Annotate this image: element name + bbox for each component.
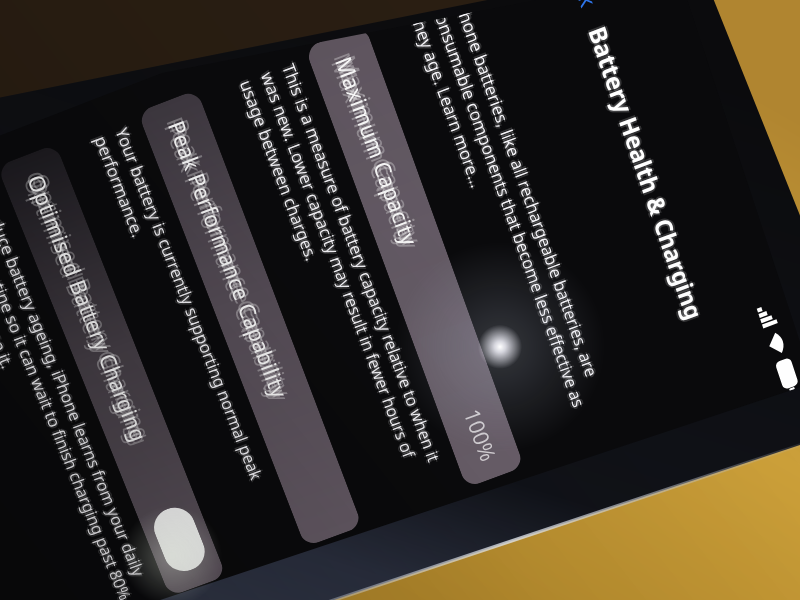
button[interactable]: Peak Performance Capability <box>137 89 362 547</box>
staticText: iPhone batteries, like all rechargeable … <box>406 0 622 447</box>
staticText: This is a measure of battery capacity re… <box>235 60 455 506</box>
staticText: Maximum Capacity <box>329 56 426 254</box>
staticText: To reduce battery ageing, iPhone learns … <box>0 179 157 600</box>
button[interactable]: Optimised Battery Charging <box>0 144 226 597</box>
staticText: To reduce battery ageing, iPhone learns … <box>0 176 158 600</box>
staticText: Your battery is currently supporting nor… <box>89 122 293 556</box>
staticText: iPhone batteries, like all rechargeable … <box>405 0 620 443</box>
button[interactable]: Maximum Capacity <box>305 25 524 488</box>
staticText: Battery Health & Charging <box>581 21 711 324</box>
staticText: Your battery is currently supporting nor… <box>90 126 295 559</box>
staticText: iPhone batteries, like all rechargeable … <box>404 0 619 446</box>
staticText: Optimised Battery Charging <box>24 169 157 444</box>
staticText: Maximum Capacity <box>326 48 424 246</box>
staticText: This is a measure of battery capacity re… <box>235 62 456 508</box>
button[interactable]: Back <box>549 0 608 16</box>
staticText: Peak Performance Capability <box>159 113 293 399</box>
staticText: Your battery is currently supporting nor… <box>87 125 292 558</box>
staticText: Optimised Battery Charging <box>22 174 155 449</box>
staticText: Back <box>559 0 604 11</box>
staticText: Maximum Capacity <box>328 52 425 250</box>
staticText: To reduce battery ageing, iPhone learns … <box>0 177 160 600</box>
staticText: Peak Performance Capability <box>157 118 291 404</box>
staticText: Maximum Capacity <box>332 51 429 249</box>
staticText: To reduce battery ageing, iPhone learns … <box>0 180 159 600</box>
staticText: To reduce battery ageing, iPhone learns … <box>0 178 158 600</box>
staticText: Your battery is currently supporting nor… <box>89 124 294 557</box>
button[interactable]: Optimised Battery Charging toggle <box>148 502 211 577</box>
staticText: Maximum Capacity <box>324 54 421 252</box>
staticText: Your battery is currently supporting nor… <box>91 123 296 557</box>
staticText: Battery Health & Charging <box>579 22 709 325</box>
staticText: Optimised Battery Charging <box>16 172 150 447</box>
staticText: Optimised Battery Charging <box>20 170 154 445</box>
staticText: Optimised Battery Charging <box>19 167 152 442</box>
staticText: This is a measure of battery capacity re… <box>233 61 453 507</box>
staticText: Battery Health & Charging <box>583 21 713 324</box>
staticText: Peak Performance Capability <box>162 120 296 406</box>
staticText: Peak Performance Capability <box>161 116 295 402</box>
staticText: This is a measure of battery capacity re… <box>234 58 454 504</box>
staticText: Battery Health & Charging <box>582 23 711 326</box>
staticText: iPhone batteries, like all rechargeable … <box>406 0 621 445</box>
staticText: Battery Health & Charging <box>580 19 710 323</box>
staticText: iPhone batteries, like all rechargeable … <box>408 0 623 445</box>
staticText: Peak Performance Capability <box>165 115 298 401</box>
staticText: This is a measure of battery capacity re… <box>236 59 457 505</box>
staticText: 100% <box>457 405 503 466</box>
